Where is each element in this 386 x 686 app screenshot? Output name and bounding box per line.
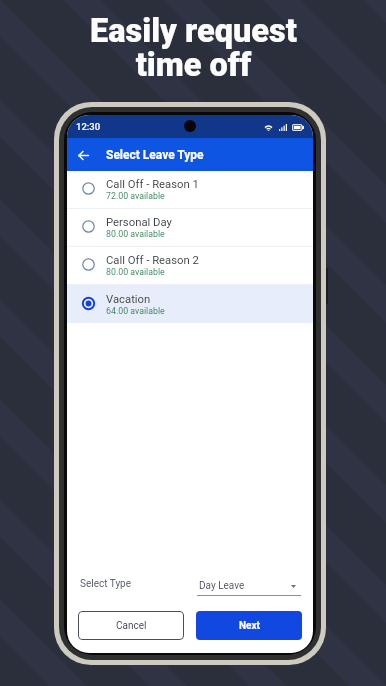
- staticText: 64.00 available: [106, 306, 165, 316]
- staticText: 80.00 available: [106, 229, 165, 239]
- staticText: Vacation: [106, 293, 151, 306]
- staticText: 80.00 available: [106, 267, 165, 277]
- staticText: Easily request time off: [90, 12, 297, 84]
- staticText: Select Leave Type: [106, 148, 204, 162]
- button[interactable]: Day Leave: [197, 580, 301, 596]
- staticText: Day Leave: [199, 580, 245, 592]
- staticText: Call Off - Reason 2: [106, 254, 199, 267]
- button[interactable]: Call Off - Reason 2: [67, 247, 313, 284]
- button[interactable]: Vacation: [67, 285, 313, 323]
- staticText: Call Off - Reason 1: [106, 178, 199, 191]
- button[interactable]: Call Off - Reason 1: [67, 171, 313, 208]
- button[interactable]: Cancel: [78, 611, 184, 640]
- button[interactable]: Next: [196, 611, 302, 640]
- staticText: Personal Day: [106, 216, 172, 229]
- staticText: Select Type: [80, 578, 132, 590]
- staticText: 72.00 available: [106, 191, 165, 201]
- button[interactable]: Personal Day: [67, 209, 313, 246]
- staticText: Cancel: [116, 620, 147, 632]
- button[interactable]: Back: [75, 147, 91, 163]
- staticText: 12:30: [76, 121, 101, 132]
- staticText: Next: [239, 620, 260, 632]
